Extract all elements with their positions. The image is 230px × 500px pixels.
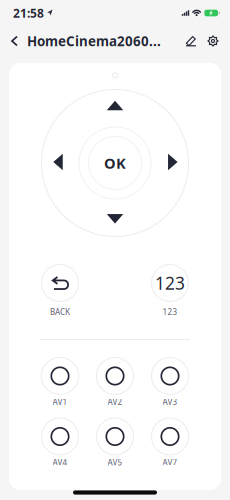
staticText: AV1 bbox=[52, 396, 67, 407]
button[interactable]: Up bbox=[96, 89, 134, 121]
staticText: AV5 bbox=[107, 457, 122, 468]
staticText: 21:58 bbox=[13, 5, 44, 21]
button[interactable]: AV5 bbox=[90, 411, 140, 461]
button[interactable]: Right bbox=[157, 143, 189, 181]
button[interactable]: AV1 bbox=[35, 351, 85, 401]
button[interactable]: Left bbox=[42, 143, 74, 181]
staticText: AV4 bbox=[52, 457, 67, 468]
button[interactable]: OK bbox=[89, 137, 141, 189]
staticText: BACK bbox=[50, 307, 70, 317]
button[interactable]: AV4 bbox=[35, 411, 85, 461]
staticText: HomeCinema2060... bbox=[27, 32, 161, 50]
button[interactable]: Back bbox=[5, 27, 24, 54]
staticText: 123 bbox=[155, 271, 185, 294]
button[interactable]: BACK bbox=[35, 258, 85, 308]
button[interactable]: Down bbox=[96, 203, 134, 235]
button[interactable]: AV7 bbox=[145, 411, 195, 461]
staticText: AV3 bbox=[162, 396, 177, 407]
staticText: AV7 bbox=[162, 457, 177, 468]
button[interactable]: AV2 bbox=[90, 351, 140, 401]
staticText: 123 bbox=[162, 307, 177, 317]
button[interactable]: Edit bbox=[180, 30, 202, 52]
button[interactable]: Settings bbox=[202, 30, 224, 52]
staticText: AV2 bbox=[107, 396, 122, 407]
button[interactable]: 123 bbox=[145, 258, 195, 308]
staticText: OK bbox=[104, 153, 126, 173]
button[interactable]: AV3 bbox=[145, 351, 195, 401]
